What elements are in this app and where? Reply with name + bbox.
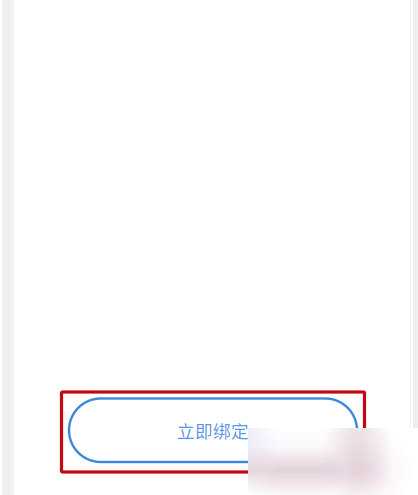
staticText: 立即绑定 — [177, 417, 249, 443]
button[interactable]: 立即绑定 — [69, 398, 357, 462]
